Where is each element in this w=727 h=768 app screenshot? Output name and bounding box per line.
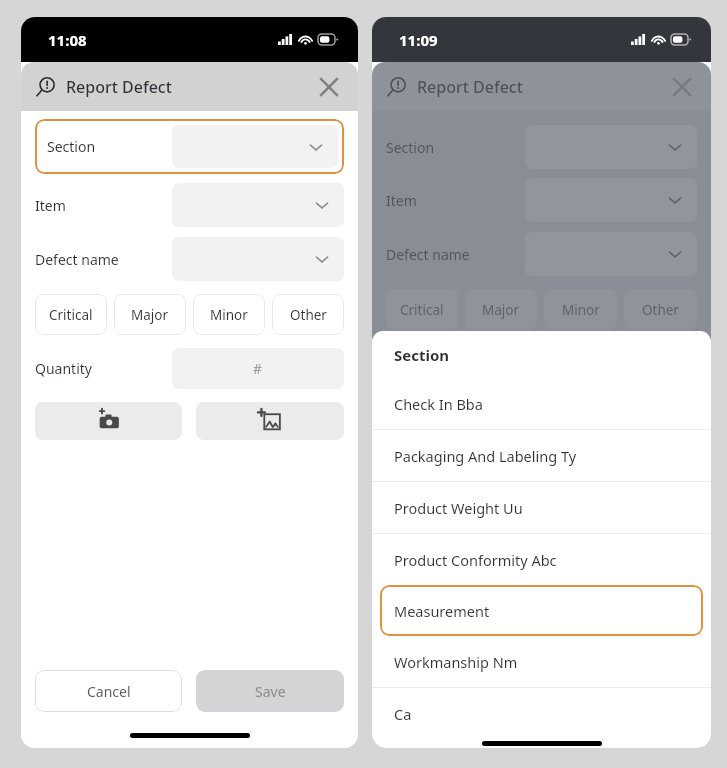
staticText: Other <box>290 306 327 324</box>
button[interactable]: Save <box>196 670 344 712</box>
button[interactable]: Major <box>114 294 186 335</box>
button[interactable]: Minor <box>193 294 265 335</box>
staticText: 11:08 <box>48 30 87 50</box>
button[interactable]: Product Conformity Abc <box>372 534 711 585</box>
staticText: Packaging And Labeling Ty <box>394 446 577 466</box>
staticText: Quantity <box>35 359 92 378</box>
staticText: Defect name <box>386 245 470 264</box>
button[interactable]: Measurement <box>380 585 703 636</box>
staticText: Section <box>386 138 435 157</box>
staticText: Section <box>394 345 450 365</box>
staticText: Check In Bba <box>394 394 483 414</box>
staticText: 11:09 <box>399 30 438 50</box>
staticText: Ca <box>394 704 412 724</box>
staticText: Other <box>642 301 679 319</box>
staticText: Section <box>47 137 96 156</box>
button[interactable]: Critical <box>35 294 107 335</box>
button[interactable]: Packaging And Labeling Ty <box>372 430 711 481</box>
staticText: Item <box>386 191 417 210</box>
button[interactable]: Cancel <box>35 670 182 712</box>
button[interactable]: # <box>172 348 344 389</box>
staticText: Workmanship Nm <box>394 652 518 672</box>
staticText: Save <box>255 682 286 701</box>
button[interactable]: Item <box>35 183 344 227</box>
button[interactable]: Ca <box>372 688 711 739</box>
staticText: Major <box>482 301 520 319</box>
button[interactable]: Check In Bba <box>372 378 711 429</box>
button[interactable]: Take photo <box>35 402 182 440</box>
button[interactable]: Product Weight Uu <box>372 482 711 533</box>
button[interactable]: Close <box>314 72 344 102</box>
staticText: Item <box>35 196 66 215</box>
staticText: # <box>253 359 263 378</box>
button[interactable]: Section <box>35 119 344 174</box>
staticText: Report Defect <box>417 76 523 98</box>
staticText: Major <box>131 306 169 324</box>
button[interactable]: Other <box>272 294 344 335</box>
staticText: Minor <box>210 306 248 324</box>
staticText: Critical <box>49 306 93 324</box>
staticText: Product Conformity Abc <box>394 550 557 570</box>
staticText: Minor <box>562 301 600 319</box>
staticText: Cancel <box>87 682 131 701</box>
staticText: Measurement <box>394 601 490 621</box>
staticText: Defect name <box>35 250 119 269</box>
staticText: Product Weight Uu <box>394 498 523 518</box>
button[interactable]: Workmanship Nm <box>372 636 711 687</box>
button[interactable]: Defect name <box>35 237 344 281</box>
staticText: Report Defect <box>66 76 172 98</box>
staticText: Critical <box>400 301 444 319</box>
button[interactable]: Add image <box>196 402 344 440</box>
